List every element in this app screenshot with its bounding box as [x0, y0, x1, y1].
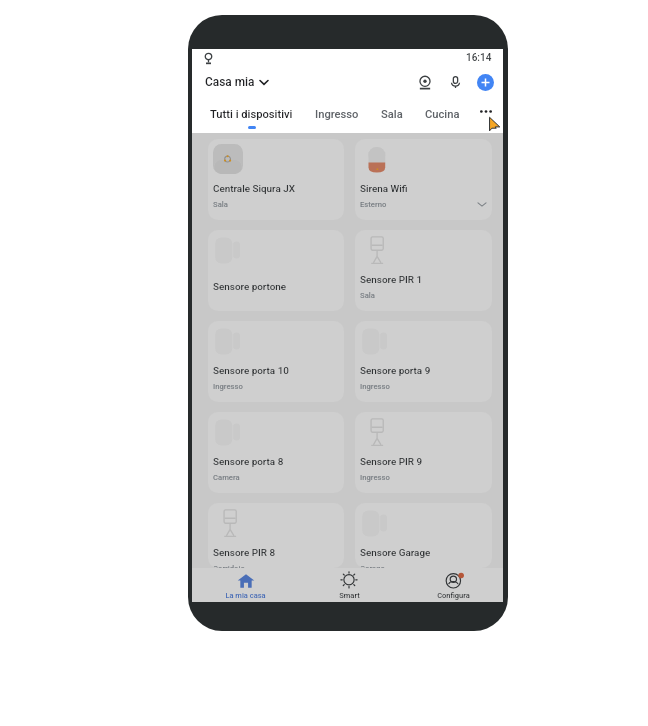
- staticText: Sensore porta 8: [213, 456, 284, 468]
- button[interactable]: Sensore porta 8: [208, 412, 344, 493]
- staticText: Sensore Garage: [360, 547, 431, 559]
- button[interactable]: Sensore PIR 9: [355, 412, 492, 493]
- button[interactable]: Add device: [477, 74, 494, 91]
- staticText: Esterno: [360, 200, 387, 209]
- button[interactable]: Sirena Wifi: [355, 139, 492, 220]
- staticText: Centrale Siqura JX: [213, 183, 295, 195]
- staticText: Casa mia: [205, 75, 255, 89]
- staticText: La mia casa: [225, 591, 266, 600]
- staticText: Ingresso: [213, 382, 243, 391]
- button[interactable]: Sensore PIR 1: [355, 230, 492, 311]
- staticText: Sensore portone: [213, 281, 287, 293]
- button[interactable]: La mia casa: [192, 568, 295, 602]
- button[interactable]: Smart: [295, 568, 399, 602]
- button[interactable]: Sensore porta 9: [355, 321, 492, 402]
- button[interactable]: Sensore porta 10: [208, 321, 344, 402]
- staticText: Corridoio: [213, 564, 245, 568]
- staticText: Sensore PIR 9: [360, 456, 423, 468]
- button[interactable]: Sensore PIR 8: [208, 503, 344, 568]
- staticText: Garage: [360, 564, 385, 568]
- staticText: Ingresso: [315, 108, 359, 121]
- button[interactable]: Sala: [370, 96, 414, 121]
- staticText: Sensore porta 10: [213, 365, 289, 377]
- staticText: Sensore PIR 1: [360, 274, 423, 286]
- staticText: Tutti i dispositivi: [210, 108, 293, 121]
- staticText: Ingresso: [360, 473, 390, 482]
- button[interactable]: Sensore portone: [208, 230, 344, 311]
- button[interactable]: More options: [475, 100, 497, 122]
- staticText: Sala: [381, 108, 403, 121]
- staticText: Smart: [339, 591, 360, 600]
- button[interactable]: Voice search: [442, 69, 468, 95]
- staticText: Camera: [213, 473, 240, 482]
- staticText: 16:14: [466, 52, 492, 64]
- staticText: Ingresso: [360, 382, 390, 391]
- staticText: Sensore porta 9: [360, 365, 431, 377]
- button[interactable]: Ingresso: [304, 96, 370, 121]
- staticText: Sensore PIR 8: [213, 547, 276, 559]
- button[interactable]: Centrale Siqura JX: [208, 139, 344, 220]
- button[interactable]: Sensore Garage: [355, 503, 492, 568]
- button[interactable]: Cucina: [414, 96, 471, 121]
- staticText: Cucina: [425, 108, 460, 121]
- button[interactable]: Configura: [399, 568, 503, 602]
- button[interactable]: Casa mia: [192, 72, 274, 92]
- staticText: Sala: [360, 291, 375, 300]
- staticText: Sirena Wifi: [360, 183, 408, 195]
- staticText: Sala: [213, 200, 228, 209]
- button[interactable]: Cameras: [412, 69, 438, 95]
- staticText: Configura: [437, 591, 470, 600]
- button[interactable]: Tutti i dispositivi: [199, 96, 304, 129]
